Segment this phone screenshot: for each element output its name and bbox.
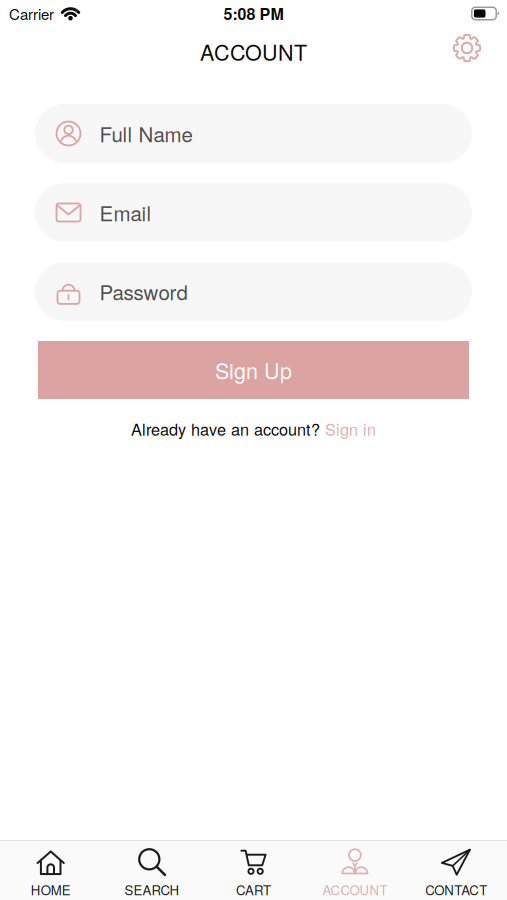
staticText: SEARCH [125,880,180,899]
button[interactable]: Settings [453,34,481,62]
staticText: ACCOUNT [322,880,387,899]
button[interactable]: Sign in [325,417,376,440]
button[interactable]: SEARCH [101,848,203,899]
staticText: Email [99,198,151,227]
staticText: Carrier [9,3,54,24]
staticText: HOME [31,880,71,899]
button[interactable]: Sign Up [38,341,469,399]
staticText: Sign Up [215,355,292,385]
button[interactable]: CART [203,848,304,899]
button[interactable]: Full Name [35,104,472,163]
staticText: CONTACT [425,880,487,899]
staticText: Password [99,277,187,306]
button[interactable]: ACCOUNT [304,848,406,899]
button[interactable]: Password [35,262,472,321]
staticText: Already have an account? [131,417,320,440]
button[interactable]: Email [35,183,472,242]
button[interactable]: HOME [0,848,101,899]
staticText: Sign in [325,417,376,440]
button[interactable]: CONTACT [406,848,507,899]
staticText: Full Name [99,119,192,148]
staticText: ACCOUNT [200,36,307,67]
staticText: CART [236,880,271,899]
staticText: 5:08 PM [223,2,283,25]
